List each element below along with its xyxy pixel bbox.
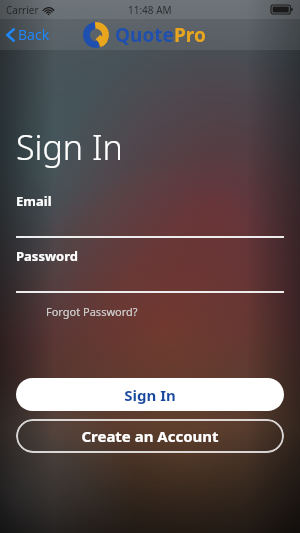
staticText: Sign In <box>124 385 176 405</box>
button[interactable]: Sign In <box>16 378 284 411</box>
staticText: Create an Account <box>81 426 219 446</box>
staticText: 11:48 AM <box>128 3 172 17</box>
staticText: Pro <box>174 22 206 48</box>
staticText: Back <box>18 25 50 44</box>
staticText: Carrier <box>6 3 39 17</box>
staticText: Sign In <box>16 124 123 170</box>
button[interactable]: Back <box>0 21 58 48</box>
staticText: Password <box>16 247 284 265</box>
staticText: Quote <box>115 22 174 48</box>
button[interactable]: Create an Account <box>16 419 284 453</box>
staticText: Email <box>16 192 284 210</box>
staticText: Forgot Password? <box>46 304 138 319</box>
button[interactable]: Forgot Password? <box>16 300 284 323</box>
